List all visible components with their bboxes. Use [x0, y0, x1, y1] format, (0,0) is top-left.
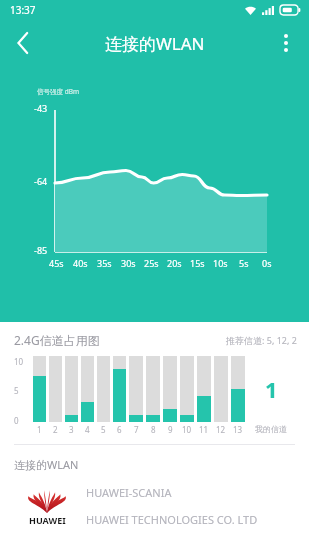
staticText: 4 [85, 424, 90, 434]
staticText: 6 [117, 424, 122, 434]
staticText: 5 [101, 424, 106, 434]
staticText: 35s [97, 257, 112, 269]
staticText: 9 [168, 424, 173, 434]
staticText: 推荐信道: 5, 12, 2 [226, 334, 297, 346]
staticText: 30s [121, 257, 136, 269]
staticText: 45s [49, 257, 64, 269]
staticText: -43 [34, 102, 48, 114]
staticText: 13:37 [10, 3, 36, 17]
button[interactable]: More options [263, 20, 309, 66]
staticText: 连接的WLAN [105, 32, 205, 55]
staticText: 13 [233, 424, 243, 434]
staticText: 15s [190, 257, 205, 269]
staticText: -64 [34, 175, 48, 187]
staticText: 10s [213, 257, 228, 269]
staticText: 信号强度 dBm [37, 87, 79, 96]
staticText: 0s [262, 257, 272, 269]
staticText: HUAWEI [29, 514, 66, 526]
staticText: 40s [73, 257, 88, 269]
staticText: HUAWEI TECHNOLOGIES CO. LTD [86, 512, 258, 527]
staticText: 10 [14, 356, 24, 367]
staticText: 25s [144, 257, 159, 269]
staticText: 1 [265, 374, 278, 404]
staticText: 11 [199, 424, 209, 434]
staticText: 2 [53, 424, 58, 434]
staticText: -85 [34, 244, 48, 256]
staticText: 1 [37, 424, 42, 434]
staticText: 2.4G信道占用图 [14, 332, 100, 348]
staticText: 10 [182, 424, 192, 434]
staticText: 5 [14, 385, 19, 396]
staticText: 7 [134, 424, 139, 434]
staticText: 我的信道 [255, 424, 287, 434]
button[interactable]: HUAWEI [14, 482, 295, 530]
staticText: 连接的WLAN [14, 457, 79, 472]
staticText: 8 [151, 424, 156, 434]
button[interactable]: Back [0, 20, 46, 66]
staticText: 5s [239, 257, 249, 269]
staticText: HUAWEI-SCANIA [86, 485, 172, 500]
staticText: 20s [167, 257, 182, 269]
staticText: 3 [69, 424, 74, 434]
staticText: 0 [14, 415, 19, 426]
staticText: 12 [216, 424, 226, 434]
